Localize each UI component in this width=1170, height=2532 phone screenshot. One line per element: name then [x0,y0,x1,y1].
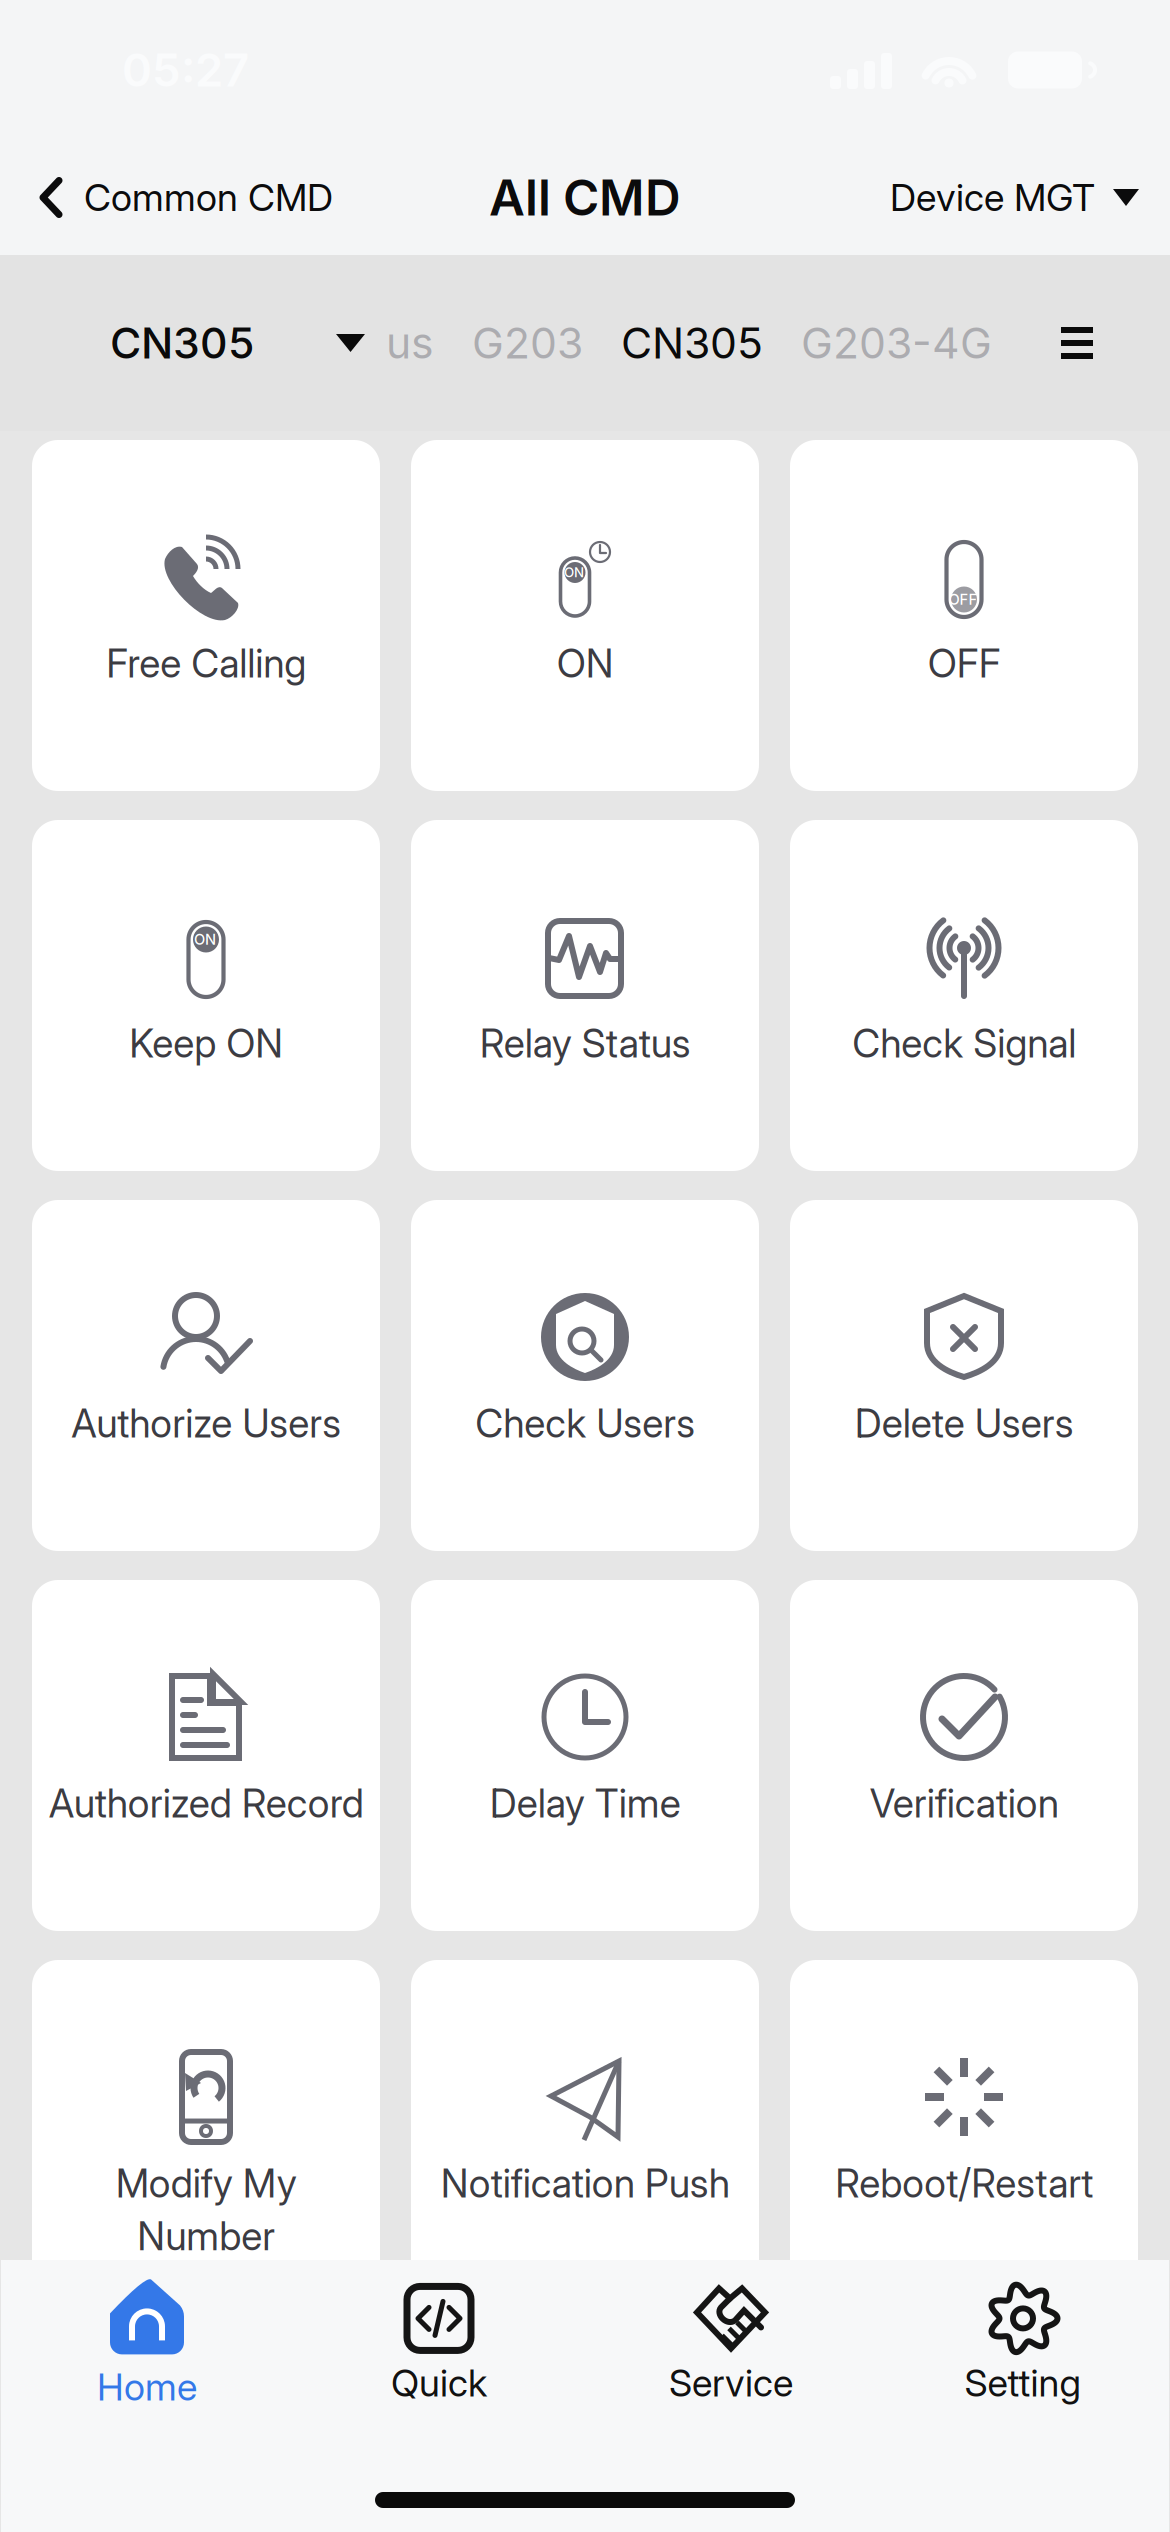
button[interactable]: Delay Time [411,1580,759,1931]
staticText: Authorize Users [71,1400,341,1447]
button[interactable]: OFF [790,440,1138,791]
staticText: Delay Time [489,1780,680,1827]
staticText: ON [564,564,584,580]
button[interactable]: G203 [453,299,602,387]
staticText: Authorized Record [48,1780,363,1827]
button[interactable]: ON [411,440,759,791]
button[interactable]: Notification Push [411,1960,759,2311]
button[interactable]: Delete Users [790,1200,1138,1551]
staticText: Home [97,2364,197,2410]
staticText: CN305 [110,317,254,369]
button[interactable]: Reboot/Restart [790,1960,1138,2311]
staticText: Quick [391,2360,487,2406]
staticText: Reboot/Restart [835,2160,1093,2207]
staticText: Free Calling [106,640,306,687]
button[interactable]: Menu [1061,307,1170,379]
staticText: Device MGT [890,175,1095,220]
staticText: Notification Push [440,2160,729,2207]
staticText: Check Signal [852,1020,1076,1067]
staticText: us [386,317,434,369]
button[interactable]: Verification [790,1580,1138,1931]
staticText: Relay Status [479,1020,690,1067]
button[interactable]: CN305 [602,299,782,387]
staticText: OFF [927,640,1000,687]
staticText: ON [194,931,216,948]
staticText: Verification [869,1780,1058,1827]
button[interactable]: Home [1,2274,293,2414]
staticText: All CMD [489,168,681,227]
staticText: Service [669,2360,793,2406]
button[interactable]: ON [32,820,380,1171]
staticText: Keep ON [129,1020,283,1067]
button[interactable]: Device MGT [890,153,1170,242]
staticText: Delete Users [854,1400,1073,1447]
button[interactable]: Authorize Users [32,1200,380,1551]
button[interactable]: Free Calling [32,440,380,791]
staticText: Common CMD [84,175,333,220]
button[interactable]: Quick [293,2274,585,2414]
button[interactable]: us [367,299,453,387]
staticText: Check Users [475,1400,695,1447]
button[interactable]: Setting [877,2274,1169,2414]
button[interactable]: Authorized Record [32,1580,380,1931]
staticText: OFF [948,591,977,608]
staticText: CN305 [621,317,763,369]
staticText: Setting [964,2360,1081,2406]
button[interactable]: Service [585,2274,877,2414]
staticText: G203-4G [801,317,992,369]
button[interactable]: Check Signal [790,820,1138,1171]
button[interactable]: Common CMD [0,153,333,242]
staticText: Modify My Number [115,2160,296,2260]
button[interactable]: Relay Status [411,820,759,1171]
button[interactable]: CN305 [0,299,365,387]
button[interactable]: Modify My Number [32,1960,380,2311]
button[interactable]: G203-4G [782,299,1011,387]
button[interactable]: Check Users [411,1200,759,1551]
staticText: G203 [472,317,583,369]
staticText: ON [556,640,613,687]
